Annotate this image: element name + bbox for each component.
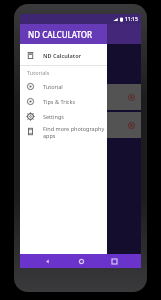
staticText: Settings: [43, 113, 64, 120]
staticText: Find more photography apps: [43, 125, 107, 139]
staticText: ND CALCULATOR: [28, 29, 93, 40]
button[interactable]: Recents: [107, 254, 121, 268]
button[interactable]: ND Calculator: [20, 48, 107, 63]
button[interactable]: Find more photography apps: [20, 124, 107, 139]
staticText: Tips & Tricks: [43, 98, 76, 105]
button[interactable]: Back: [40, 254, 54, 268]
staticText: 11:15: [125, 16, 138, 23]
staticText: 2 ND filter: [26, 53, 50, 60]
staticText: Tutorials: [27, 69, 50, 76]
staticText: ND Calculator: [43, 52, 82, 59]
button[interactable]: Tutorial: [20, 79, 107, 94]
button[interactable]: Settings: [20, 109, 107, 124]
button[interactable]: Tips & Tricks: [20, 94, 107, 109]
button[interactable]: Home: [74, 254, 88, 268]
staticText: Tutorial: [43, 83, 63, 90]
